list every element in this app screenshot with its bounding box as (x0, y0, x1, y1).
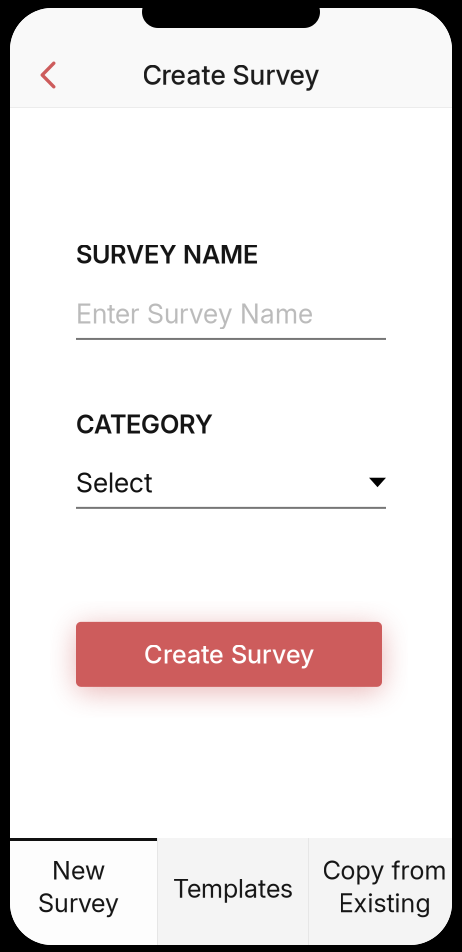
staticText: Create Survey (142, 59, 319, 91)
staticText: Copy from (322, 855, 446, 886)
staticText: New (52, 855, 105, 886)
staticText: Create Survey (144, 639, 314, 670)
button[interactable]: Copy from (309, 838, 452, 945)
staticText: Enter Survey Name (76, 298, 313, 330)
staticText: CATEGORY (76, 409, 213, 440)
staticText: Existing (338, 888, 430, 918)
staticText: Select (76, 467, 153, 499)
staticText: Survey (38, 888, 119, 918)
button[interactable]: Back (17, 45, 79, 105)
button[interactable]: Templates (158, 838, 308, 945)
staticText: Templates (173, 873, 293, 904)
button[interactable]: Create Survey (78, 622, 384, 687)
staticText: SURVEY NAME (76, 239, 258, 270)
button[interactable]: New (10, 838, 157, 945)
button[interactable]: Select (76, 467, 386, 509)
